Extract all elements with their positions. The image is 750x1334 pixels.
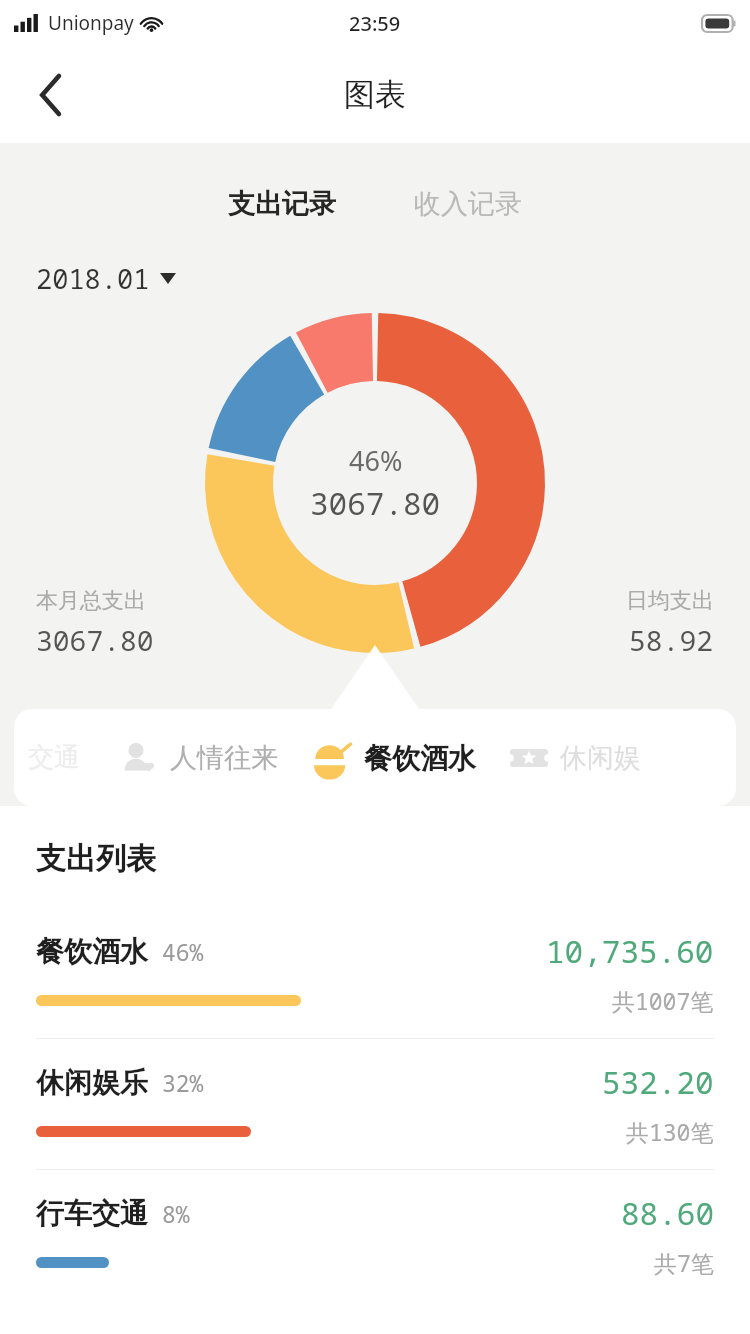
staticText: 休闲娱 [560,741,641,775]
staticText: 日均支出 [626,587,714,615]
button[interactable]: 休闲娱乐 [0,1039,750,1169]
staticText: 共1007笔 [612,985,714,1016]
staticText: 休闲娱乐 [36,1065,148,1100]
button[interactable]: 2018.01 [32,256,180,301]
button[interactable]: 休闲娱 [506,735,645,781]
staticText: 46% [349,442,403,479]
button[interactable]: Back [22,66,80,124]
staticText: 2018.01 [36,260,150,297]
staticText: 32% [162,1067,204,1098]
staticText: 图表 [344,75,406,114]
button[interactable]: 收入记录 [400,181,536,227]
button[interactable]: 人情往来 [116,735,282,781]
staticText: 58.92 [629,621,714,659]
button[interactable]: 支出记录 [214,181,350,227]
staticText: 人情往来 [170,741,278,775]
staticText: 本月总支出 [36,587,146,615]
staticText: 餐饮酒水 [36,934,148,969]
button[interactable]: 餐饮酒水 [0,908,750,1038]
staticText: 共7笔 [654,1247,714,1278]
staticText: 餐饮酒水 [364,741,476,776]
staticText: 支出列表 [36,840,156,878]
staticText: 532.20 [602,1061,714,1103]
staticText: 10,735.60 [546,930,714,972]
staticText: 共130笔 [626,1116,714,1147]
staticText: 3067.80 [310,482,441,524]
staticText: 收入记录 [414,187,522,221]
staticText: 行车交通 [36,1196,148,1231]
staticText: 23:59 [349,10,401,37]
staticText: 8% [162,1198,190,1229]
button[interactable]: 行车交通 [0,1170,750,1300]
button[interactable]: 餐饮酒水 [308,734,480,782]
staticText: 交通 [28,741,80,774]
staticText: 支出记录 [228,187,336,221]
staticText: 3067.80 [36,621,154,659]
button[interactable]: 交通 [22,735,86,780]
staticText: Unionpay [48,10,134,36]
staticText: 46% [162,936,204,967]
staticText: 88.60 [621,1192,714,1234]
